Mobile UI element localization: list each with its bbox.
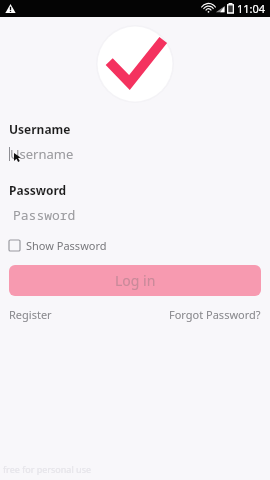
staticText: Show Password [26,238,107,253]
button[interactable]: Forgot Password? [169,307,261,322]
button[interactable]: Password [9,205,261,225]
staticText: Password [9,182,67,198]
button[interactable]: Log in [9,265,261,296]
button[interactable]: Show Password [9,238,107,253]
staticText: Register [9,307,52,322]
staticText: Username [10,145,74,163]
staticText: free for personal use [3,463,92,475]
button[interactable]: Register [9,307,52,322]
staticText: Username [9,121,71,137]
staticText: Log in [115,271,156,290]
button[interactable]: Username [9,144,261,164]
staticText: Password [13,206,76,224]
staticText: 11:04 [237,1,266,16]
staticText: Forgot Password? [169,307,261,322]
